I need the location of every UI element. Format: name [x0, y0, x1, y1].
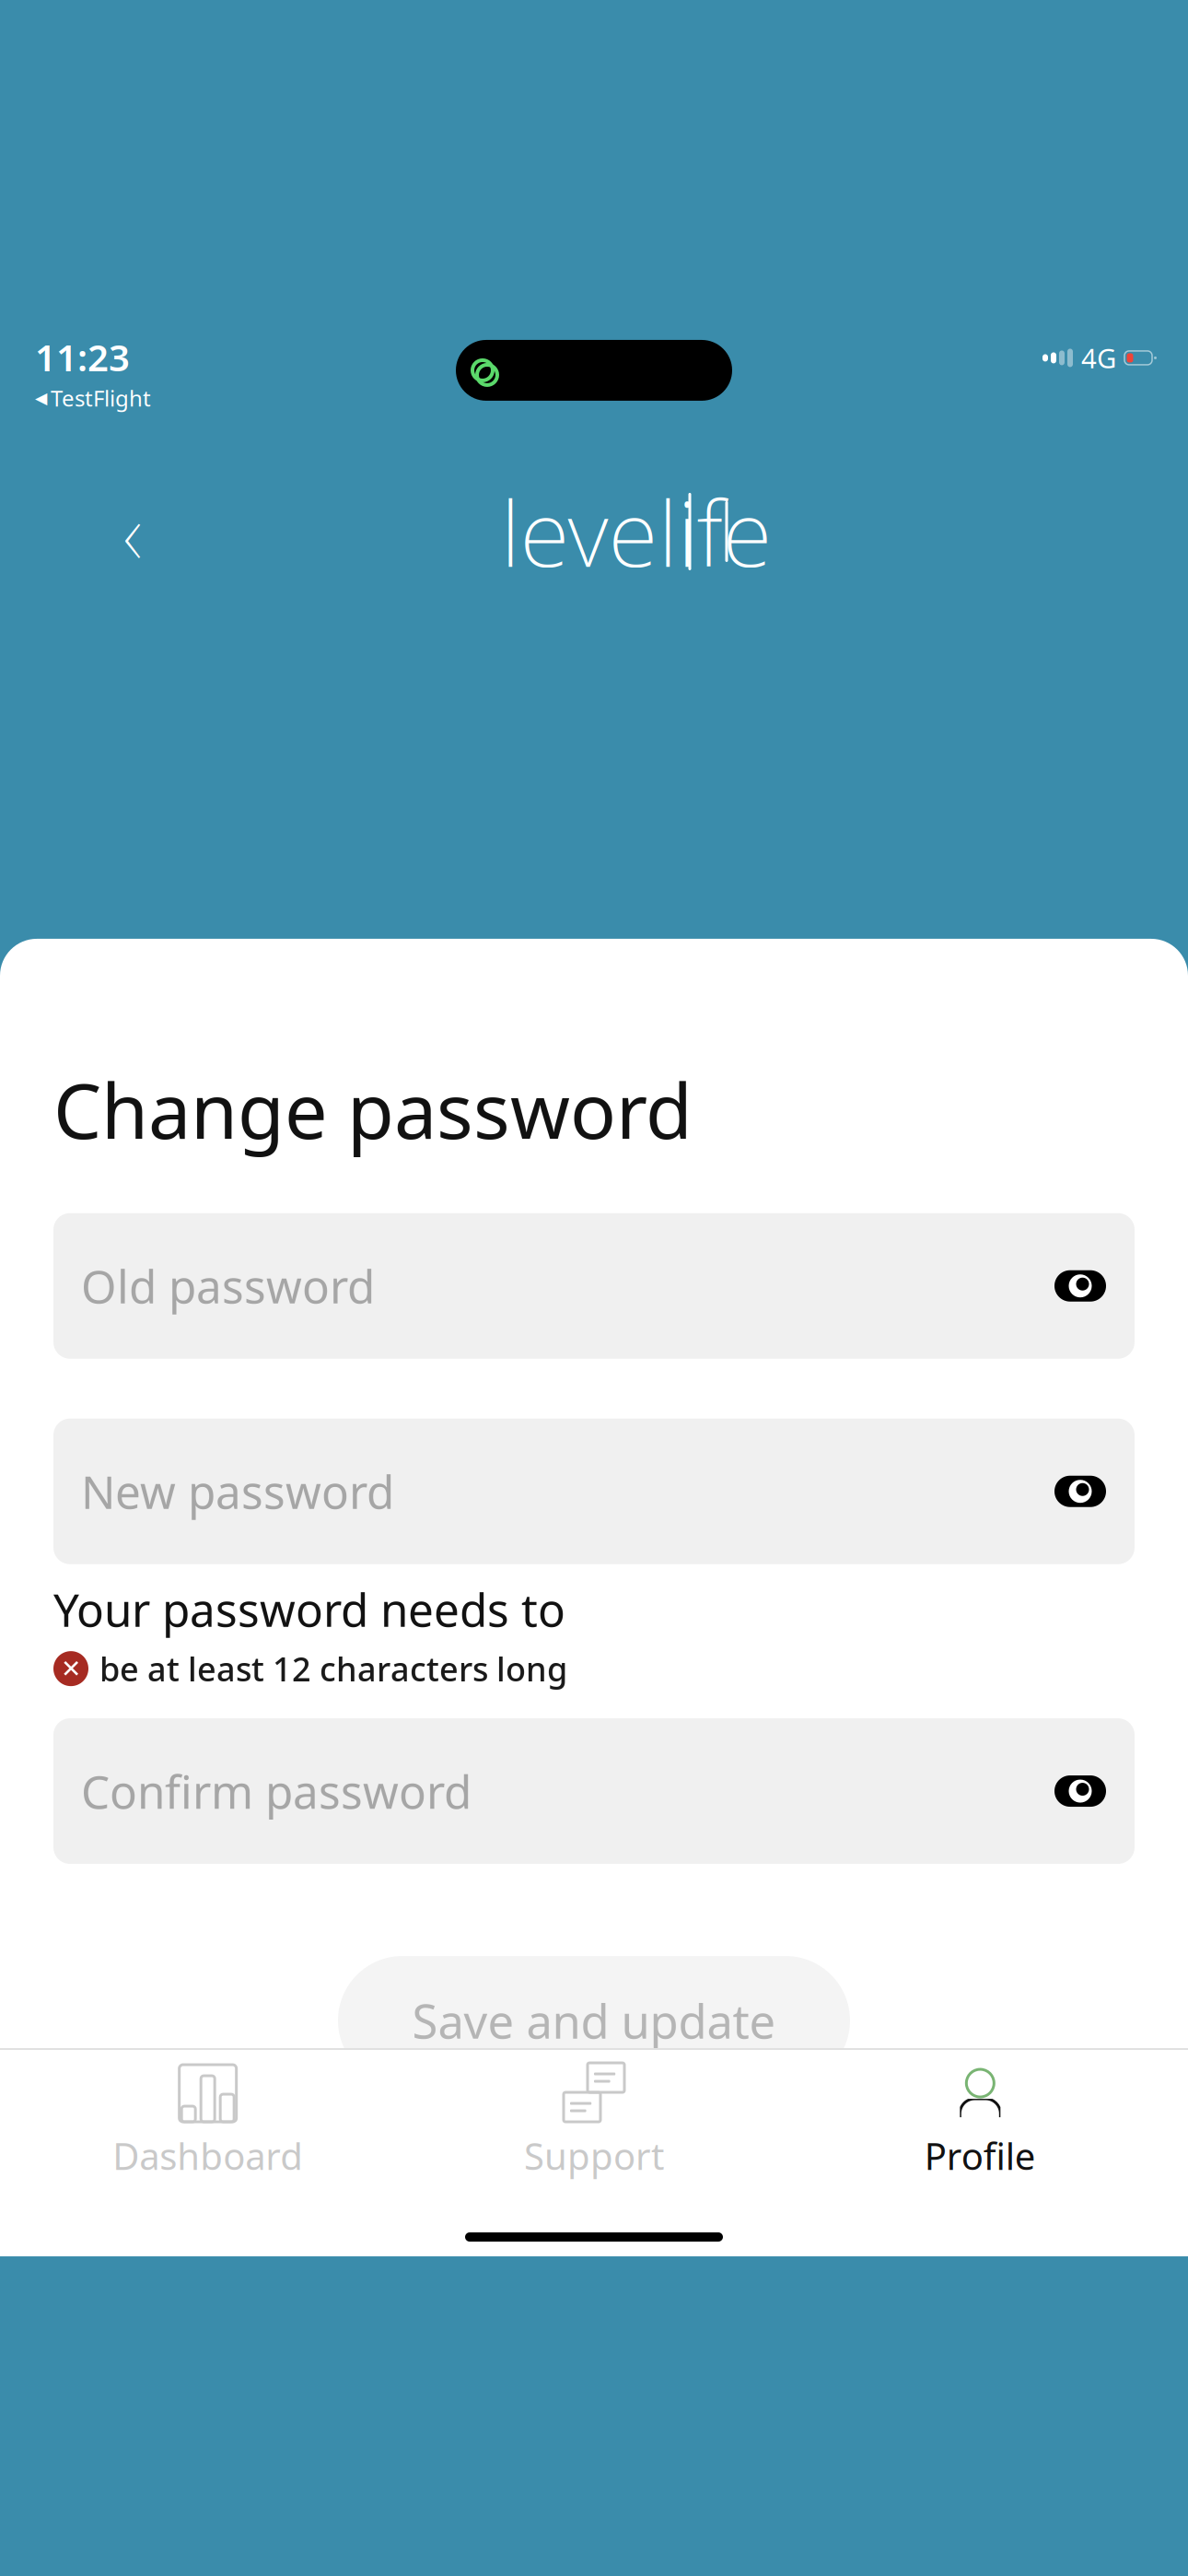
- staticText: 4G: [1081, 340, 1116, 376]
- staticText: Dashboard: [113, 2131, 303, 2180]
- button[interactable]: Profile: [787, 2050, 1173, 2189]
- button[interactable]: Save and update: [338, 1956, 850, 2085]
- staticText: ‹: [123, 473, 142, 590]
- staticText: TestFlight: [51, 383, 151, 413]
- staticText: ◀: [35, 389, 47, 407]
- staticText: Your password needs to: [53, 1579, 565, 1639]
- staticText: New password: [81, 1461, 394, 1522]
- staticText: Old password: [81, 1256, 375, 1316]
- button[interactable]: Show New password: [1037, 1464, 1107, 1519]
- staticText: Profile: [924, 2131, 1036, 2180]
- staticText: Support: [524, 2131, 664, 2180]
- staticText: 11:23: [35, 333, 130, 382]
- staticText: Confirm password: [81, 1761, 472, 1821]
- button[interactable]: Support: [401, 2050, 787, 2189]
- staticText: levelife: [501, 471, 772, 592]
- staticText: ✕: [61, 1655, 81, 1683]
- button[interactable]: Back: [88, 487, 177, 576]
- button[interactable]: Dashboard: [15, 2050, 401, 2189]
- button[interactable]: Show Old password: [1037, 1258, 1107, 1314]
- button[interactable]: Show Confirm password: [1037, 1763, 1107, 1819]
- staticText: be at least 12 characters long: [99, 1647, 567, 1691]
- staticText: Save and update: [412, 1989, 776, 2051]
- staticText: Change password: [53, 1059, 693, 1160]
